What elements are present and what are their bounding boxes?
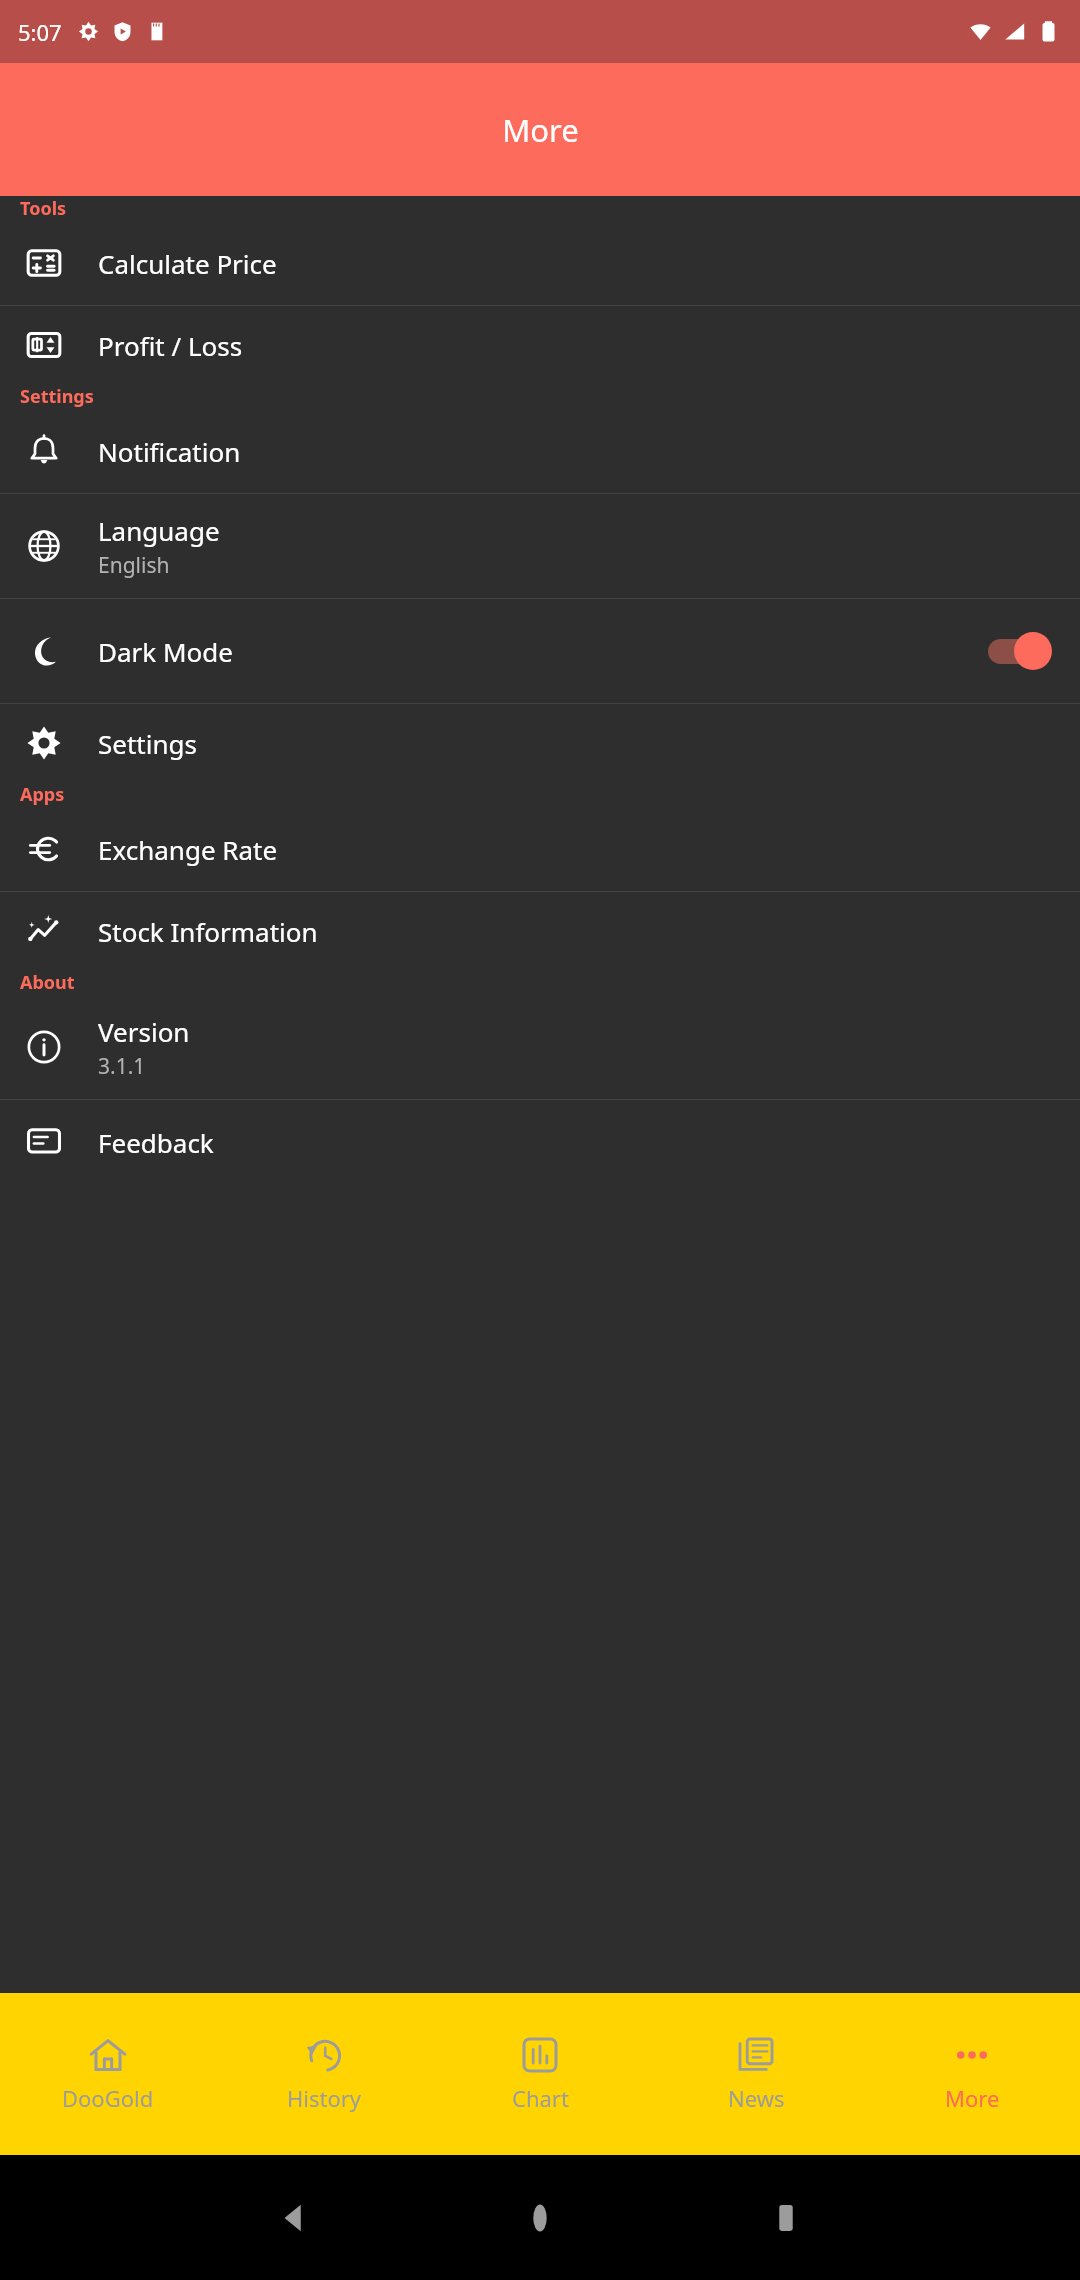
staticText: Apps [20,782,65,807]
button[interactable]: More [864,1993,1080,2155]
staticText: Notification [98,434,241,469]
staticText: History [287,2083,362,2113]
button[interactable]: Settings [0,704,1080,782]
staticText: DooGold [62,2083,154,2113]
button[interactable]: Dark Mode toggle [984,629,1054,673]
staticText: Language [98,513,220,548]
button[interactable]: Home [518,2196,562,2240]
button[interactable]: Exchange Rate [0,807,1080,891]
button[interactable]: Profit / Loss [0,306,1080,384]
button[interactable]: Back [272,2196,316,2240]
button[interactable]: Stock Information [0,892,1080,970]
button[interactable]: Chart [432,1993,648,2155]
staticText: Version [98,1014,190,1049]
button[interactable]: Calculate Price [0,221,1080,305]
button[interactable]: Version [0,995,1080,1099]
staticText: Settings [98,726,197,761]
staticText: Exchange Rate [98,832,278,867]
staticText: Chart [512,2083,569,2113]
staticText: Tools [20,196,67,221]
staticText: Profit / Loss [98,328,243,363]
staticText: About [20,970,75,995]
button[interactable]: News [648,1993,864,2155]
button[interactable]: Feedback [0,1100,1080,1184]
staticText: 5:07 [18,17,62,47]
staticText: News [728,2083,785,2113]
button[interactable]: Language [0,494,1080,598]
staticText: Settings [20,384,94,409]
staticText: 3.1.1 [98,1052,146,1081]
button[interactable]: History [216,1993,432,2155]
staticText: Feedback [98,1125,214,1160]
staticText: More [945,2083,1000,2113]
button[interactable]: Dark Mode [0,599,1080,703]
staticText: English [98,551,170,580]
button[interactable]: Notification [0,409,1080,493]
staticText: More [502,109,579,151]
staticText: Calculate Price [98,246,277,281]
button[interactable]: DooGold [0,1993,216,2155]
staticText: Stock Information [98,914,318,949]
staticText: Dark Mode [98,634,233,669]
button[interactable]: Recent apps [764,2196,808,2240]
